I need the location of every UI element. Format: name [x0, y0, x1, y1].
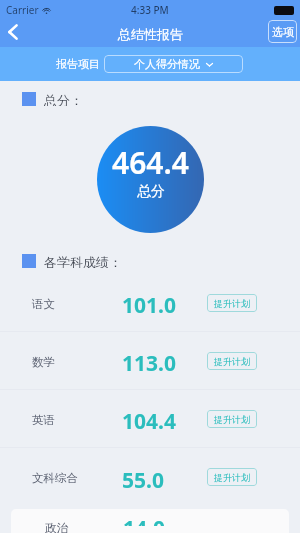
staticText: 提升计划	[214, 356, 250, 367]
button[interactable]: 提升计划	[207, 410, 257, 428]
staticText: 总结性报告	[118, 26, 183, 42]
button[interactable]: 提升计划	[207, 294, 257, 312]
staticText: 英语	[32, 413, 122, 427]
staticText: 语文	[32, 297, 122, 311]
staticText: 个人得分情况	[134, 57, 200, 71]
staticText: 55.0	[122, 466, 207, 495]
staticText: 数学	[32, 355, 122, 369]
button[interactable]: 英语	[0, 390, 300, 447]
button[interactable]: 个人得分情况	[104, 55, 243, 73]
staticText: 选项	[272, 25, 294, 39]
button[interactable]: 数学	[0, 332, 300, 389]
staticText: Carrier	[6, 3, 39, 17]
staticText: 提升计划	[214, 414, 250, 425]
staticText: 101.0	[122, 291, 207, 320]
staticText: 报告项目	[56, 57, 100, 71]
staticText: 文科综合	[32, 471, 122, 485]
staticText: 总分：	[44, 92, 83, 106]
staticText: 14.0	[123, 514, 165, 526]
staticText: 总分	[137, 183, 165, 201]
staticText: 提升计划	[214, 298, 250, 309]
staticText: 113.0	[122, 349, 207, 378]
button[interactable]: 选项	[268, 20, 297, 43]
staticText: 政治	[45, 521, 123, 533]
button[interactable]: 文科综合	[0, 448, 300, 506]
staticText: 各学科成绩：	[44, 254, 122, 268]
button[interactable]: 提升计划	[207, 352, 257, 370]
staticText: 提升计划	[214, 472, 250, 483]
staticText: 464.4	[112, 142, 189, 183]
button[interactable]: 语文	[0, 274, 300, 331]
button[interactable]: 提升计划	[207, 468, 257, 486]
staticText: 104.4	[122, 407, 207, 436]
staticText: 4:33 PM	[131, 3, 169, 17]
button[interactable]: Back	[0, 19, 26, 45]
